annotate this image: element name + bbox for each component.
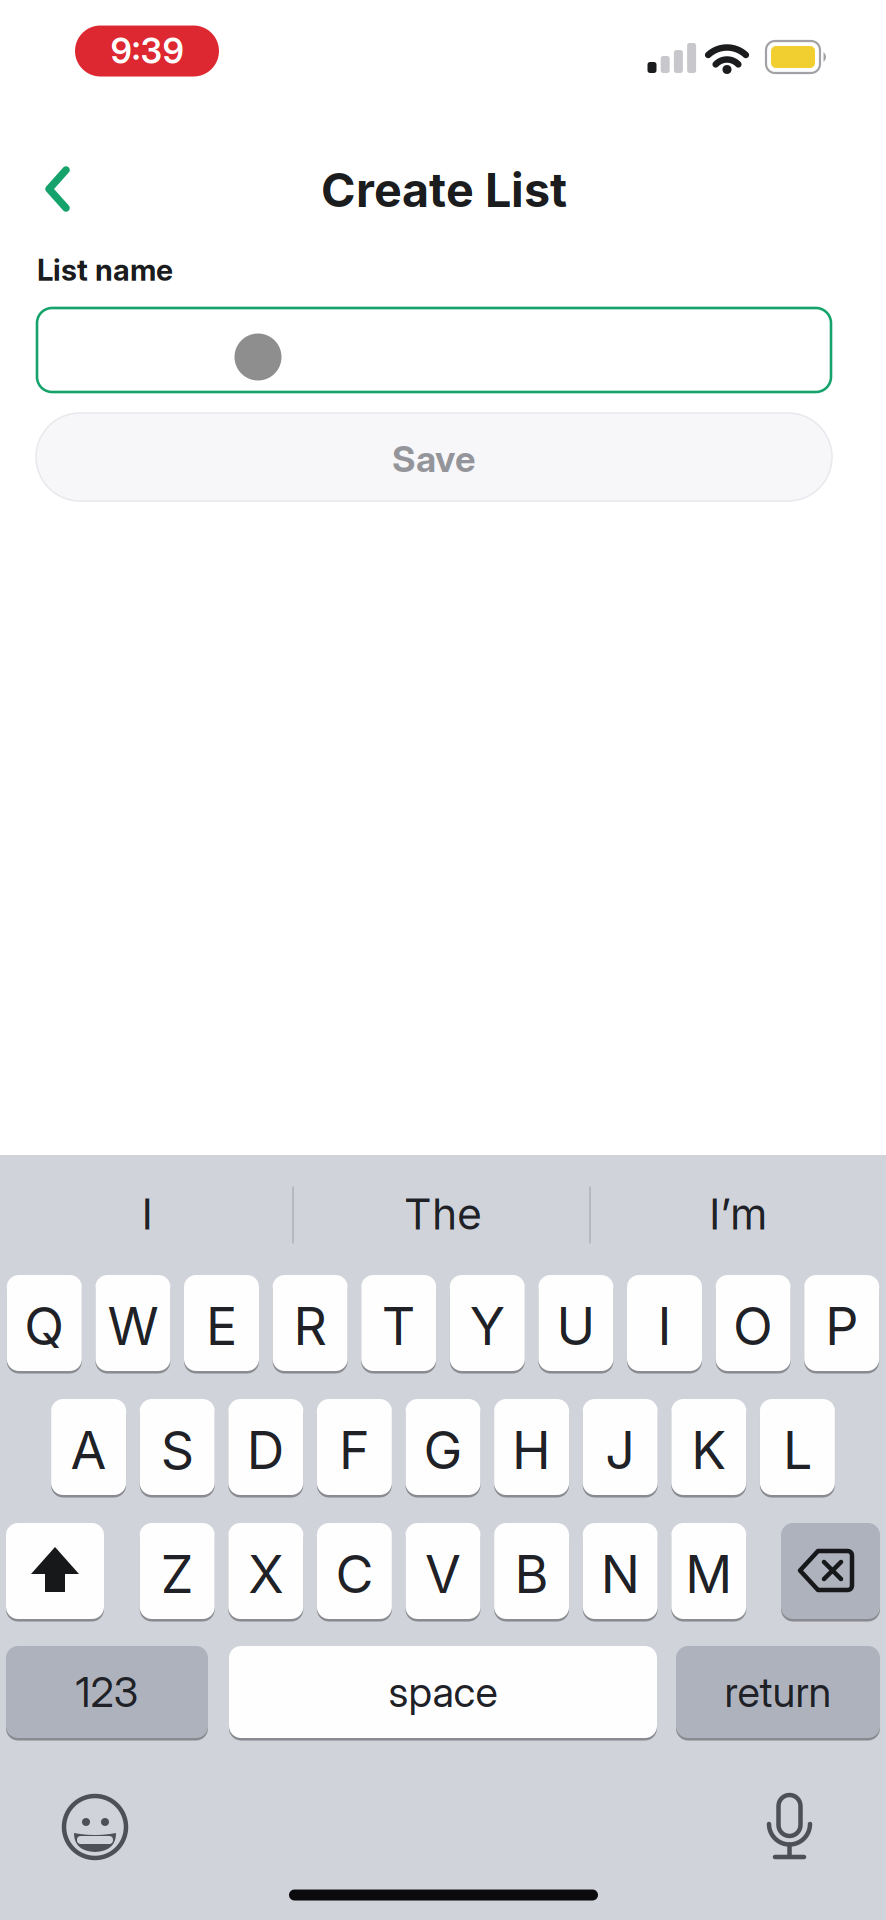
button[interactable]: D [228,1397,303,1496]
staticText: H [512,1419,551,1481]
staticText: 9:39 [110,31,183,71]
staticText: W [107,1295,158,1357]
button[interactable]: S [140,1397,215,1496]
button[interactable]: U [538,1273,613,1372]
button[interactable]: X [228,1521,303,1620]
button[interactable]: Recording indicator, 9:39 [75,25,219,76]
button[interactable]: I [7,1174,287,1254]
staticText: Create List [321,162,567,218]
button[interactable]: G [405,1397,480,1496]
staticText: I’m [709,1189,767,1239]
staticText: space [388,1668,497,1716]
staticText: T [382,1295,416,1357]
button[interactable]: Numbers [6,1644,208,1739]
staticText: C [335,1543,373,1605]
staticText: U [556,1295,595,1357]
button[interactable]: Emoji [60,1792,130,1862]
button[interactable]: N [583,1521,658,1620]
staticText: K [691,1419,726,1481]
button[interactable]: I’m [598,1174,878,1254]
staticText: S [161,1419,194,1481]
staticText: F [339,1419,370,1481]
staticText: A [71,1419,107,1481]
button[interactable]: Back [18,144,98,234]
staticText: V [425,1543,461,1605]
staticText: Save [392,438,476,480]
button[interactable]: T [361,1273,436,1372]
button[interactable]: P [804,1273,879,1372]
button[interactable]: Save [36,413,832,501]
staticText: B [515,1543,549,1605]
button[interactable]: Y [450,1273,525,1372]
button[interactable]: R [273,1273,348,1372]
staticText: Q [24,1295,64,1357]
button[interactable]: J [583,1397,658,1496]
staticText: O [733,1295,773,1357]
button[interactable]: The [303,1174,583,1254]
button[interactable]: Dictation [754,1785,824,1865]
button[interactable]: H [494,1397,569,1496]
staticText: List name [37,253,173,287]
button[interactable]: return [676,1644,880,1739]
button[interactable]: List name [37,308,831,392]
staticText: L [783,1419,812,1481]
staticText: M [685,1543,732,1605]
button[interactable]: Q [7,1273,82,1372]
button[interactable]: C [317,1521,392,1620]
button[interactable]: L [760,1397,835,1496]
button[interactable]: Z [140,1521,215,1620]
staticText: The [404,1189,482,1239]
button[interactable]: M [671,1521,746,1620]
staticText: P [825,1295,858,1357]
staticText: Y [470,1295,505,1357]
staticText: return [724,1668,831,1716]
button[interactable]: Delete [781,1521,880,1620]
staticText: G [423,1419,462,1481]
button[interactable]: E [184,1273,259,1372]
staticText: I [141,1189,152,1239]
staticText: E [206,1295,237,1357]
button[interactable]: K [671,1397,746,1496]
staticText: N [601,1543,640,1605]
button[interactable]: B [494,1521,569,1620]
button[interactable]: Shift [6,1521,104,1620]
staticText: Z [161,1543,194,1605]
staticText: R [294,1295,327,1357]
button[interactable]: V [405,1521,480,1620]
staticText: I [657,1295,671,1357]
button[interactable]: W [95,1273,170,1372]
staticText: X [248,1543,283,1605]
staticText: D [247,1419,285,1481]
button[interactable]: I [627,1273,702,1372]
button[interactable]: F [317,1397,392,1496]
staticText: J [605,1419,635,1481]
button[interactable]: A [51,1397,126,1496]
button[interactable]: space [229,1644,657,1739]
staticText: 123 [75,1668,138,1716]
button[interactable]: O [716,1273,791,1372]
